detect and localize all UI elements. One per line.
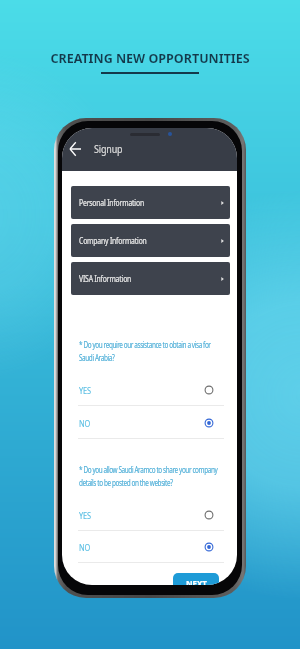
staticText: NO — [79, 541, 90, 553]
button[interactable]: VISA Information — [71, 262, 230, 295]
staticText: CREATING NEW OPPORTUNITIES — [0, 50, 300, 67]
button[interactable]: NEXT — [173, 573, 219, 585]
staticText: NO — [79, 417, 90, 429]
staticText: YES — [79, 384, 91, 396]
button[interactable]: Personal Information — [71, 186, 230, 219]
staticText: * Do you require our assistance to obtai… — [79, 339, 219, 363]
staticText: Signup — [94, 141, 123, 157]
button[interactable]: YES — [78, 498, 224, 531]
staticText: * Do you allow Saudi Aramco to share you… — [79, 464, 219, 488]
button[interactable]: Company Information — [71, 224, 230, 257]
staticText: VISA Information — [79, 273, 132, 285]
button[interactable]: NO — [78, 406, 224, 439]
staticText: Personal Information — [79, 197, 145, 209]
button[interactable]: Back — [69, 141, 82, 157]
button[interactable]: NO — [78, 530, 224, 563]
staticText: NEXT — [186, 578, 207, 585]
button[interactable]: YES — [78, 373, 224, 406]
staticText: Company Information — [79, 235, 147, 247]
staticText: YES — [79, 509, 91, 521]
